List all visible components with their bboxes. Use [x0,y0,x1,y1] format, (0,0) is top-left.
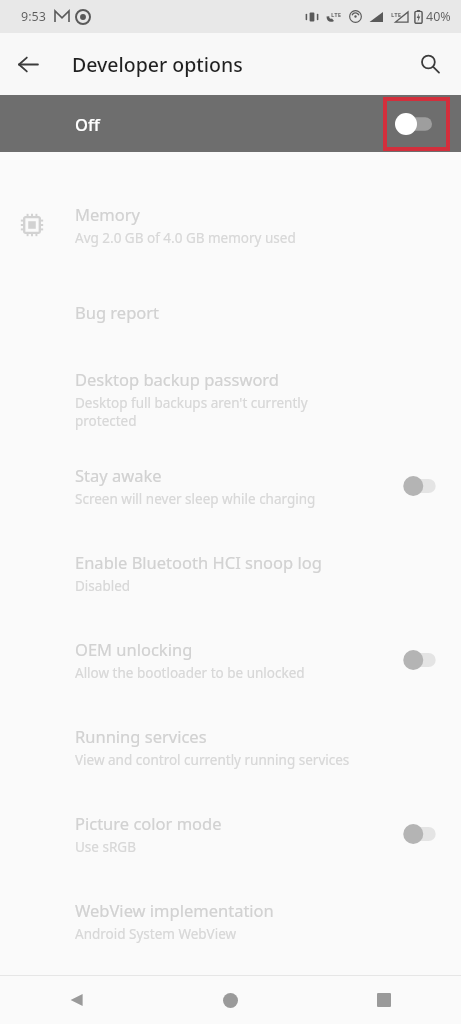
staticText: Off [75,113,100,135]
staticText: LTE [391,11,402,19]
button[interactable]: Back [0,976,153,1024]
button[interactable]: Running services [0,703,461,790]
staticText: WebView implementation [75,899,274,921]
staticText: 9:53 [21,8,46,25]
button[interactable]: Home [153,976,307,1024]
staticText: Stay awake [75,464,162,486]
staticText: 40% [426,8,451,25]
button[interactable]: Recent apps [307,976,461,1024]
button[interactable]: Automatic system updates [0,964,461,1024]
button[interactable]: WebView implementation [0,877,461,964]
staticText: Android System WebView [75,925,237,943]
staticText: Screen will never sleep while charging [75,490,316,508]
button[interactable]: Enable Bluetooth HCI snoop log [0,529,461,616]
button[interactable]: Search [408,42,452,86]
staticText: Memory [75,203,140,225]
staticText: Apply updates when device restarts [75,998,300,1016]
staticText: Avg 2.0 GB of 4.0 GB memory used [75,229,296,247]
button[interactable]: Desktop backup password [0,355,461,442]
staticText: Use sRGB [75,838,136,856]
button[interactable]: Back [6,42,50,86]
staticText: Automatic system updates [75,972,281,994]
staticText: OEM unlocking [75,638,193,660]
button[interactable]: Off [0,95,461,152]
staticText: Bug report [75,301,160,323]
staticText: Running services [75,725,207,747]
staticText: Enable Bluetooth HCI snoop log [75,551,322,573]
staticText: Picture color mode [75,812,222,834]
button[interactable]: Bug report [0,268,461,355]
staticText: LTE [331,11,342,19]
staticText: Allow the bootloader to be unlocked [75,664,305,682]
button[interactable]: OEM unlocking [0,616,461,703]
staticText: Developer options [72,51,243,78]
button[interactable]: Memory [0,181,461,268]
staticText: Desktop backup password [75,368,280,390]
staticText: Disabled [75,577,131,595]
staticText: Desktop full backups aren't currently pr… [75,394,371,430]
button[interactable]: Stay awake [0,442,461,529]
button[interactable]: Picture color mode [0,790,461,877]
staticText: View and control currently running servi… [75,751,350,769]
